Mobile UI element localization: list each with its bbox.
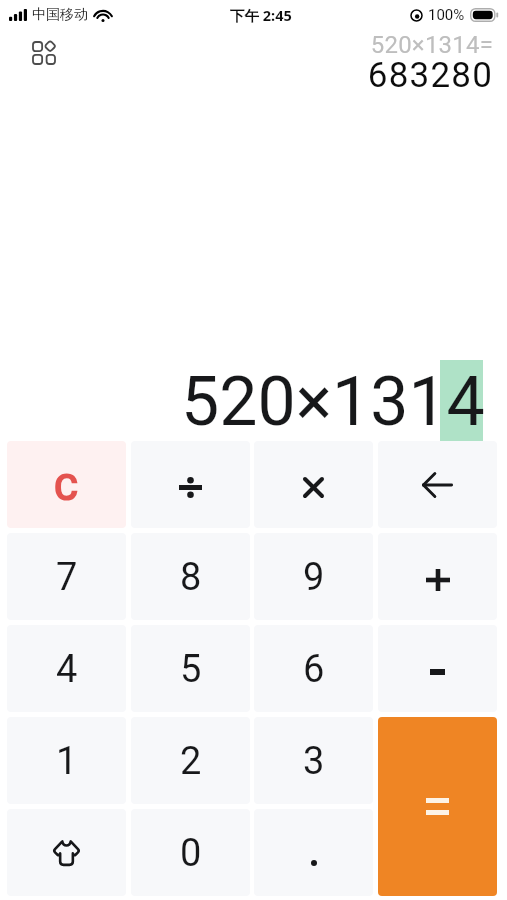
staticText: 6	[303, 647, 325, 692]
button[interactable]: 6	[254, 625, 373, 712]
button[interactable]: Minus	[378, 625, 497, 712]
button[interactable]: 9	[254, 533, 373, 620]
staticText: 7	[56, 555, 78, 600]
button[interactable]: 1	[7, 717, 126, 804]
staticText: 1	[56, 739, 78, 784]
staticText: 8	[180, 555, 202, 600]
staticText: 3	[303, 739, 325, 784]
button[interactable]: Theme	[7, 809, 126, 896]
staticText: 683280	[367, 55, 493, 96]
button[interactable]: 8	[131, 533, 250, 620]
button[interactable]: Plus	[378, 533, 497, 620]
button[interactable]: 7	[7, 533, 126, 620]
button[interactable]: 0	[131, 809, 250, 896]
button[interactable]: 5	[131, 625, 250, 712]
button[interactable]: 3	[254, 717, 373, 804]
button[interactable]: Backspace	[378, 441, 497, 528]
staticText: 100%	[428, 6, 465, 24]
staticText: 9	[303, 555, 325, 600]
button[interactable]: Equals	[378, 717, 497, 896]
staticText: C	[54, 466, 79, 509]
button[interactable]: Mini programs	[24, 33, 64, 73]
button[interactable]: 4	[7, 625, 126, 712]
staticText: 520×1314=	[370, 31, 493, 59]
staticText: 520×1314	[181, 362, 485, 442]
staticText: 4	[56, 647, 78, 692]
staticText: 0	[180, 831, 202, 876]
staticText: 5	[180, 647, 202, 692]
staticText: 2	[180, 739, 202, 784]
button[interactable]: Multiply	[254, 441, 373, 528]
button[interactable]: Decimal point	[254, 809, 373, 896]
button[interactable]: C	[7, 441, 126, 528]
button[interactable]: 2	[131, 717, 250, 804]
staticText: 下午 2:45	[230, 5, 292, 25]
button[interactable]: Divide	[131, 441, 250, 528]
staticText: 中国移动	[32, 6, 88, 24]
